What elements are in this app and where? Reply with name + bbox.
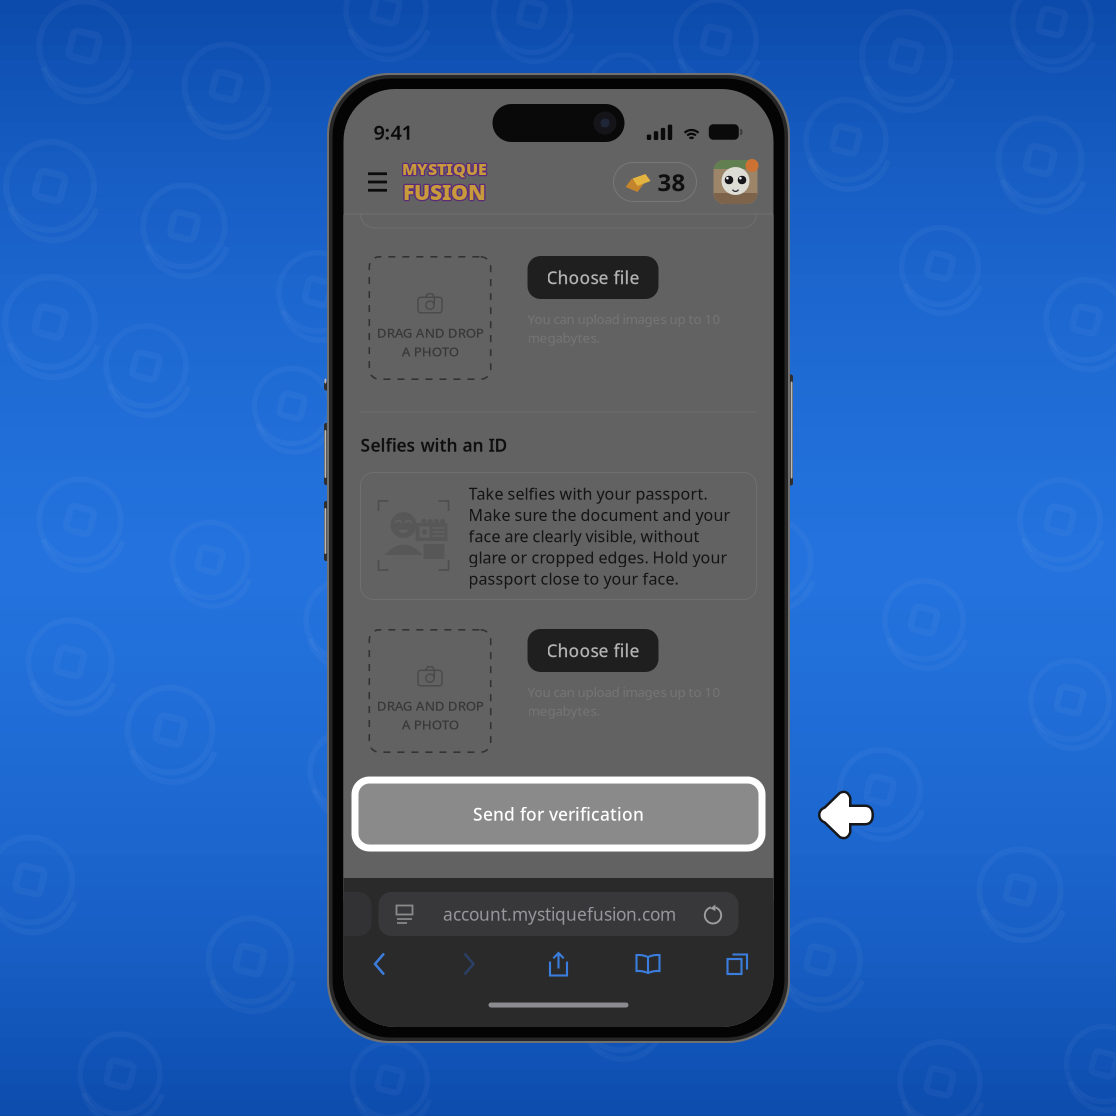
staticText: FUSION [402, 176, 485, 205]
button[interactable]: Forward [443, 943, 495, 985]
staticText: FUSION [403, 176, 486, 204]
button[interactable]: Reader view [383, 892, 425, 936]
button[interactable]: Reload [693, 892, 733, 936]
staticText: DRAG AND DROP A PHOTO [376, 697, 483, 733]
staticText: FUSION [403, 179, 486, 207]
button[interactable]: Choose file [527, 629, 658, 672]
staticText: MYSTIQUE [403, 159, 488, 180]
button[interactable]: Bookmarks [622, 943, 674, 985]
staticText: FUSION [404, 176, 487, 205]
staticText: Take selfies with your passport. Make su… [468, 483, 730, 589]
button[interactable]: 38 [613, 162, 696, 201]
button[interactable]: Choose file [527, 256, 658, 299]
staticText: Choose file [546, 639, 639, 662]
staticText: FUSION [404, 178, 487, 207]
staticText: Choose file [546, 266, 639, 289]
staticText: Selfies with an ID [360, 433, 507, 456]
staticText: MYSTIQUE [402, 159, 487, 181]
staticText: 38 [657, 166, 685, 198]
staticText: FUSION [404, 177, 487, 206]
staticText: MYSTIQUE [402, 157, 487, 178]
staticText: You can upload images up to 10 megabytes… [527, 683, 720, 719]
button[interactable]: Menu [357, 160, 397, 204]
button[interactable]: Back [353, 943, 405, 985]
staticText: You can upload images up to 10 megabytes… [527, 310, 720, 346]
button[interactable]: Profile [713, 160, 757, 204]
staticText: MYSTIQUE [401, 157, 486, 178]
staticText: account.mystiquefusion.com [443, 902, 676, 925]
staticText: FUSION [403, 177, 486, 206]
staticText: FUSION [402, 177, 485, 206]
staticText: DRAG AND DROP A PHOTO [376, 324, 483, 360]
staticText: MYSTIQUE [403, 157, 488, 178]
staticText: FUSION [402, 178, 485, 207]
staticText: MYSTIQUE [403, 158, 488, 179]
button[interactable]: Send for verification [351, 776, 765, 851]
staticText: MYSTIQUE [402, 158, 487, 179]
staticText: MYSTIQUE [401, 159, 486, 180]
staticText: MYSTIQUE [401, 158, 486, 179]
staticText: 9:41 [373, 119, 412, 145]
button[interactable]: Tabs [711, 943, 763, 985]
staticText: Send for verification [473, 802, 644, 825]
button[interactable]: Share [532, 943, 584, 985]
